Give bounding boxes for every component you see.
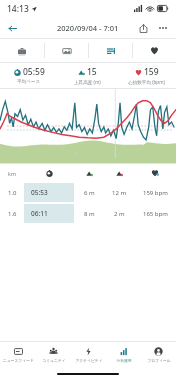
button[interactable]: アクティビティ — [71, 342, 106, 368]
staticText: 06:11 — [31, 209, 48, 218]
button[interactable]: Back — [3, 19, 21, 37]
staticText: 2 m — [114, 210, 125, 218]
staticText: ニュースフィード — [3, 358, 34, 363]
staticText: 2020/09/04 - 7:01 — [57, 23, 119, 33]
staticText: 14:13 — [7, 3, 29, 15]
button[interactable]: Share — [134, 19, 152, 37]
button[interactable]: More options — [154, 19, 172, 37]
staticText: アクティビティ — [75, 358, 103, 363]
staticText: 心拍数平均 (bpm) — [128, 79, 165, 85]
button[interactable]: ニュースフィード — [0, 342, 36, 368]
staticText: 165 bpm — [143, 210, 168, 218]
staticText: 159 bpm — [143, 189, 168, 197]
staticText: プロフィール — [147, 358, 171, 363]
staticText: 上昇高度 (m) — [74, 79, 101, 85]
button[interactable]: 15 — [58, 63, 117, 88]
staticText: 15 — [87, 66, 97, 78]
staticText: 1.0 — [8, 189, 17, 197]
button[interactable]: 1.6 — [0, 203, 176, 224]
staticText: 159 — [144, 66, 159, 78]
button[interactable]: Add photo — [0, 39, 44, 62]
staticText: 05:53 — [31, 188, 48, 197]
button[interactable]: 159 — [117, 63, 176, 88]
button[interactable]: Map — [45, 39, 88, 62]
staticText: 8 m — [84, 210, 95, 218]
button[interactable]: 1.0 — [0, 182, 176, 203]
button[interactable]: 分析履歴 — [106, 342, 141, 368]
button[interactable]: プロフィール — [141, 342, 176, 368]
staticText: 05:59 — [23, 66, 45, 78]
staticText: 分析履歴 — [116, 358, 132, 363]
staticText: 平均ペース — [17, 79, 41, 85]
staticText: 6 m — [84, 189, 95, 197]
button[interactable]: コミュニティ — [36, 342, 71, 368]
button[interactable]: 05:59 — [0, 63, 58, 88]
staticText: コミュニティ — [42, 358, 66, 363]
staticText: 1.6 — [8, 210, 17, 218]
staticText: 12 m — [112, 189, 127, 197]
button[interactable]: Compare — [89, 39, 132, 62]
staticText: km — [8, 170, 17, 177]
button[interactable]: Favorite — [133, 39, 176, 62]
